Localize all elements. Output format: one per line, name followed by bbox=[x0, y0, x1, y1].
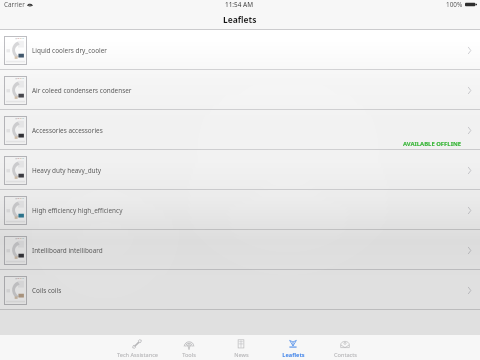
button[interactable]: Intelliboard intelliboard bbox=[0, 230, 480, 270]
staticText: Liquid coolers dry_cooler bbox=[32, 46, 107, 55]
button[interactable]: Leaflets bbox=[267, 335, 319, 360]
staticText: Leaflets bbox=[282, 351, 305, 359]
button[interactable]: News bbox=[215, 335, 267, 360]
button[interactable]: Heavy duty heavy_duty bbox=[0, 150, 480, 190]
button[interactable]: Coils coils bbox=[0, 270, 480, 310]
button[interactable]: Tools bbox=[163, 335, 215, 360]
button[interactable]: High efficiency high_efficiency bbox=[0, 190, 480, 230]
staticText: Carrier bbox=[4, 0, 25, 9]
staticText: Leaflets bbox=[223, 14, 257, 25]
staticText: 11:54 AM bbox=[225, 0, 254, 9]
staticText: High efficiency high_efficiency bbox=[32, 206, 123, 215]
button[interactable]: Liquid coolers dry_cooler bbox=[0, 30, 480, 70]
staticText: Coils coils bbox=[32, 286, 62, 295]
staticText: AVAILABLE OFFLINE bbox=[403, 140, 462, 148]
staticText: Accessories accessories bbox=[32, 126, 103, 135]
staticText: Intelliboard intelliboard bbox=[32, 246, 103, 255]
staticText: 100% bbox=[446, 0, 463, 9]
button[interactable]: Air coleed condensers condenser bbox=[0, 70, 480, 110]
staticText: Tools bbox=[182, 351, 196, 359]
staticText: Air coleed condensers condenser bbox=[32, 86, 132, 95]
button[interactable]: Accessories accessories bbox=[0, 110, 480, 150]
staticText: News bbox=[234, 351, 249, 359]
staticText: Tech Assistance bbox=[117, 351, 158, 359]
button[interactable]: Tech Assistance bbox=[111, 335, 163, 360]
button[interactable]: Contacts bbox=[319, 335, 371, 360]
staticText: Heavy duty heavy_duty bbox=[32, 166, 102, 175]
staticText: Contacts bbox=[334, 351, 357, 359]
